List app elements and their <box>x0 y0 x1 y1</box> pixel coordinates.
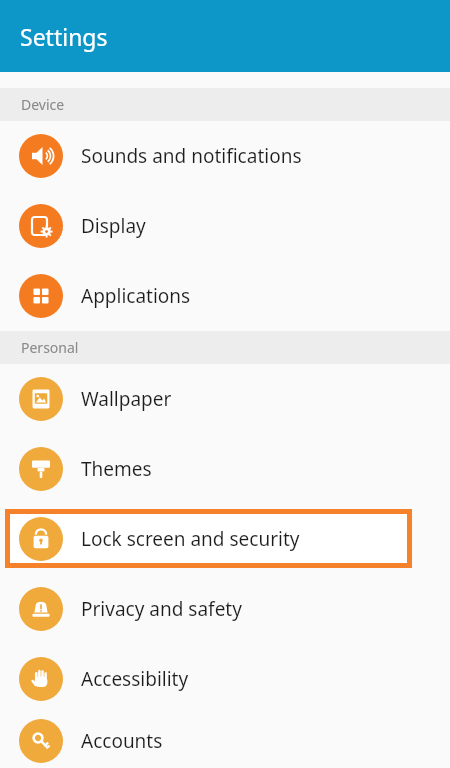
staticText: Device <box>21 95 65 114</box>
staticText: Display <box>81 213 146 239</box>
staticText: Accounts <box>81 728 163 754</box>
staticText: Wallpaper <box>81 386 172 412</box>
staticText: Applications <box>81 283 191 309</box>
button[interactable]: Accounts <box>0 714 450 768</box>
button[interactable]: Themes <box>0 434 450 504</box>
staticText: Privacy and safety <box>81 596 242 622</box>
button[interactable]: Lock screen and security <box>0 504 450 574</box>
button[interactable]: Applications <box>0 261 450 331</box>
button[interactable]: Privacy and safety <box>0 574 450 644</box>
button[interactable]: Sounds and notifications <box>0 121 450 191</box>
staticText: Settings <box>20 21 108 52</box>
staticText: Lock screen and security <box>81 526 300 552</box>
staticText: Themes <box>81 456 152 482</box>
button[interactable]: Display <box>0 191 450 261</box>
staticText: Personal <box>21 338 79 357</box>
staticText: Accessibility <box>81 666 189 692</box>
staticText: Sounds and notifications <box>81 143 302 169</box>
button[interactable] <box>0 0 450 88</box>
button[interactable]: Accessibility <box>0 644 450 714</box>
button[interactable]: Wallpaper <box>0 364 450 434</box>
